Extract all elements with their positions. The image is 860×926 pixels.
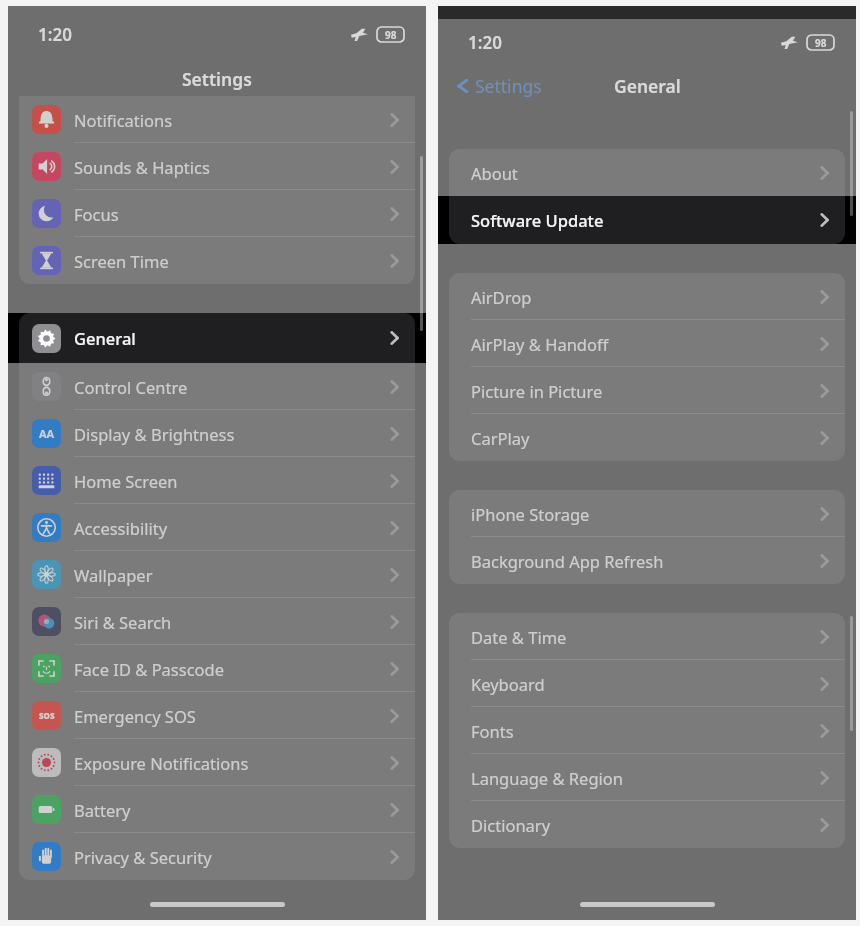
button[interactable]: Battery (19, 786, 415, 833)
staticText: CarPlay (471, 427, 809, 449)
staticText: Dictionary (471, 814, 809, 836)
staticText: Exposure Notifications (74, 752, 379, 774)
staticText: Fonts (471, 720, 809, 742)
button[interactable]: Exposure Notifications (19, 739, 415, 786)
staticText: 1:20 (38, 23, 72, 46)
button[interactable]: Software Update (449, 196, 845, 244)
button[interactable]: Focus (19, 190, 415, 237)
staticText: 98 (815, 36, 827, 50)
button[interactable]: Background App Refresh (449, 537, 845, 584)
staticText: Language & Region (471, 767, 809, 789)
staticText: Picture in Picture (471, 380, 809, 402)
staticText: Sounds & Haptics (74, 156, 379, 178)
button[interactable]: Siri & Search (19, 598, 415, 645)
button[interactable]: CarPlay (449, 414, 845, 461)
staticText: AirPlay & Handoff (471, 333, 809, 355)
button[interactable]: iPhone Storage (449, 490, 845, 537)
staticText: Emergency SOS (74, 705, 379, 727)
button[interactable]: AA (19, 410, 415, 457)
staticText: AirDrop (471, 286, 809, 308)
staticText: SOS (39, 710, 55, 721)
staticText: Keyboard (471, 673, 809, 695)
staticText: 1:20 (468, 31, 502, 54)
button[interactable]: Screen Time (19, 237, 415, 284)
button[interactable]: Dictionary (449, 801, 845, 848)
staticText: Face ID & Passcode (74, 658, 379, 680)
staticText: Background App Refresh (471, 550, 809, 572)
staticText: Battery (74, 799, 379, 821)
staticText: 98 (385, 28, 397, 42)
staticText: Date & Time (471, 626, 809, 648)
other: Back (454, 75, 470, 97)
staticText: Notifications (74, 109, 379, 131)
staticText: Privacy & Security (74, 846, 379, 868)
button[interactable]: Picture in Picture (449, 367, 845, 414)
button[interactable]: Keyboard (449, 660, 845, 707)
button[interactable]: Home Screen (19, 457, 415, 504)
staticText: Settings (475, 74, 542, 98)
button[interactable]: Language & Region (449, 754, 845, 801)
staticText: AA (39, 426, 55, 441)
staticText: About (471, 162, 809, 184)
button[interactable]: Control Centre (19, 363, 415, 410)
staticText: Siri & Search (74, 611, 379, 633)
staticText: Focus (74, 203, 379, 225)
staticText: Software Update (471, 209, 809, 231)
staticText: Wallpaper (74, 564, 379, 586)
staticText: iPhone Storage (471, 503, 809, 525)
button[interactable]: Accessibility (19, 504, 415, 551)
button[interactable]: AirDrop (449, 273, 845, 320)
button[interactable]: Back (454, 74, 542, 98)
staticText: Control Centre (74, 376, 379, 398)
staticText: General (74, 327, 379, 349)
staticText: Settings (182, 67, 252, 91)
button[interactable]: Sounds & Haptics (19, 143, 415, 190)
button[interactable]: AirPlay & Handoff (449, 320, 845, 367)
staticText: Accessibility (74, 517, 379, 539)
button[interactable]: Wallpaper (19, 551, 415, 598)
button[interactable]: About (449, 149, 845, 196)
button[interactable]: Face ID & Passcode (19, 645, 415, 692)
staticText: Screen Time (74, 250, 379, 272)
button[interactable]: Privacy & Security (19, 833, 415, 880)
button[interactable]: Date & Time (449, 613, 845, 660)
staticText: Home Screen (74, 470, 379, 492)
button[interactable]: Notifications (19, 96, 415, 143)
button[interactable]: General (19, 313, 415, 363)
button[interactable]: Fonts (449, 707, 845, 754)
staticText: General (614, 74, 681, 98)
button[interactable]: SOS (19, 692, 415, 739)
staticText: Display & Brightness (74, 423, 379, 445)
